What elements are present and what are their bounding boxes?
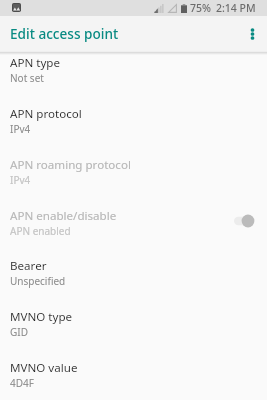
button[interactable]: APN enable/disable toggle: [234, 209, 256, 233]
button[interactable]: APN type: [0, 47, 267, 98]
staticText: Not set: [10, 71, 44, 85]
button[interactable]: APN enable/disable: [0, 200, 267, 251]
staticText: Edit access point: [10, 24, 119, 43]
button[interactable]: APN protocol: [0, 98, 267, 149]
staticText: APN enabled: [10, 224, 71, 238]
button[interactable]: Bearer: [0, 250, 267, 301]
staticText: APN enable/disable: [10, 208, 117, 224]
staticText: 75%: [190, 1, 211, 15]
button[interactable]: APN roaming protocol: [0, 149, 267, 200]
staticText: Unspecified: [10, 274, 66, 288]
staticText: Bearer: [10, 258, 47, 274]
staticText: 2:14 PM: [216, 1, 256, 15]
staticText: MVNO type: [10, 309, 73, 325]
staticText: APN protocol: [10, 106, 82, 122]
staticText: 4D4F: [10, 376, 34, 390]
button[interactable]: More options: [237, 19, 267, 49]
button[interactable]: MVNO type: [0, 301, 267, 352]
staticText: GID: [10, 325, 28, 339]
staticText: IPv4: [10, 122, 31, 136]
staticText: APN type: [10, 55, 61, 71]
staticText: MVNO value: [10, 360, 78, 376]
staticText: APN roaming protocol: [10, 157, 131, 173]
button[interactable]: MVNO value: [0, 352, 267, 400]
staticText: IPv4: [10, 173, 31, 187]
